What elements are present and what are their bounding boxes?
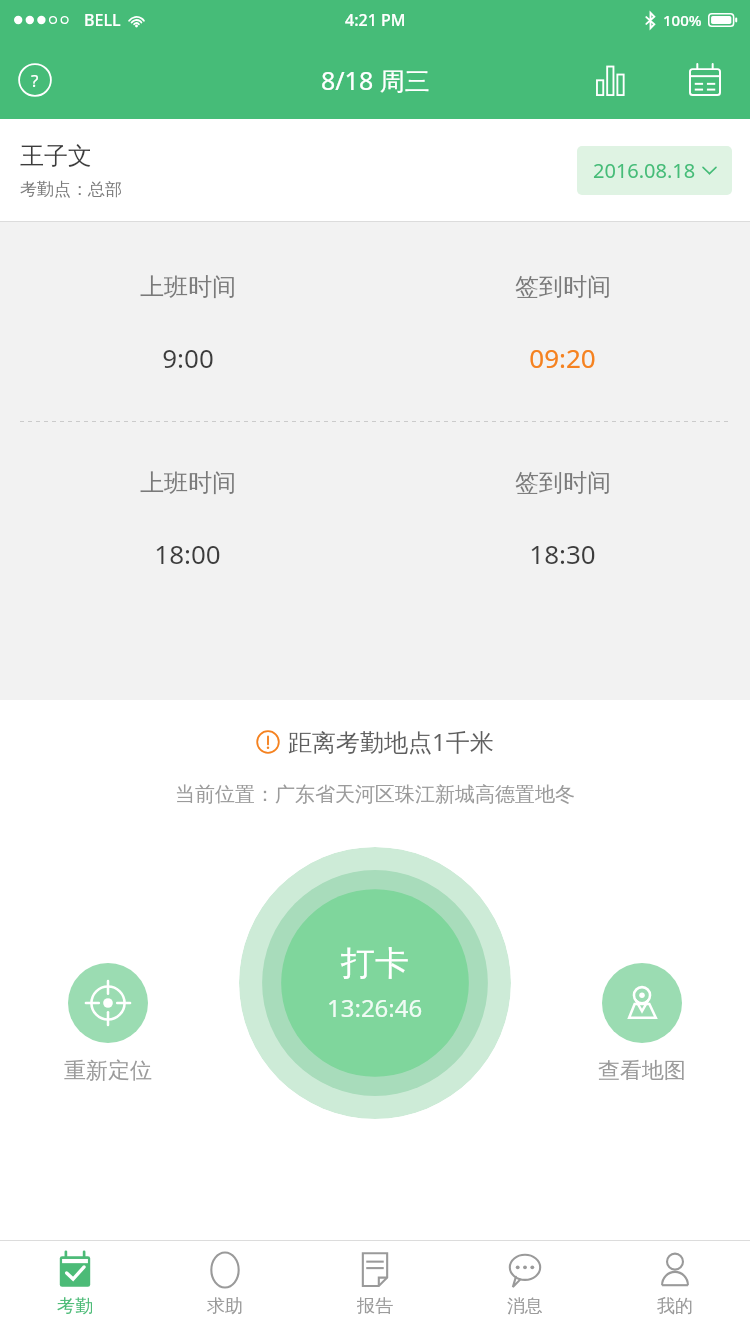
staticText: ? [31,69,39,92]
button[interactable]: 查看地图 [592,957,692,1091]
staticText: 当前位置：广东省天河区珠江新城高德置地冬 [175,782,575,807]
staticText: 18:00 [154,536,221,571]
staticText: 2016.08.18 [593,157,696,184]
button[interactable]: 求助 [150,1241,300,1334]
staticText: 王子文 [20,141,92,171]
staticText: 报告 [357,1295,393,1318]
staticText: 考勤 [57,1295,93,1318]
staticText: 重新定位 [64,1057,152,1085]
staticText: 打卡 [341,942,409,985]
button[interactable]: 我的 [600,1241,750,1334]
staticText: 18:30 [529,536,596,571]
button[interactable]: 打卡 [239,847,511,1119]
staticText: BELL [84,9,121,31]
staticText: 消息 [507,1295,543,1318]
staticText: 查看地图 [598,1057,686,1085]
staticText: 上班时间 [140,468,236,498]
staticText: 距离考勤地点1千米 [288,725,494,758]
button[interactable]: 2016.08.18 [577,146,732,195]
button[interactable]: Calendar [678,53,732,107]
staticText: 我的 [657,1295,693,1318]
staticText: 签到时间 [515,272,611,302]
button[interactable]: 重新定位 [58,957,158,1091]
button[interactable]: 考勤 [0,1241,150,1334]
staticText: 09:20 [529,340,596,375]
staticText: 9:00 [162,340,214,375]
staticText: 4:21 PM [345,9,406,31]
button[interactable]: Statistics [584,53,638,107]
staticText: 考勤点：总部 [20,179,122,200]
button[interactable]: 报告 [300,1241,450,1334]
staticText: 求助 [207,1295,243,1318]
button[interactable]: 消息 [450,1241,600,1334]
button[interactable]: Help [10,55,60,105]
staticText: 上班时间 [140,272,236,302]
staticText: 13:26:46 [327,991,423,1024]
staticText: 100% [663,10,702,30]
staticText: 8/18 周三 [321,63,430,97]
staticText: 签到时间 [515,468,611,498]
